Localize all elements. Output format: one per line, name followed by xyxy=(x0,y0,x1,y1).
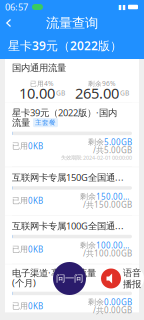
staticText: 5.00GB xyxy=(104,137,132,147)
staticText: ▮▮ xyxy=(118,3,126,11)
staticText: GB xyxy=(120,89,129,97)
staticText: 已用 xyxy=(12,196,28,206)
staticText: 0KB xyxy=(28,301,43,311)
staticText: 电子渠道·享免费流量 xyxy=(12,266,96,279)
staticText: 已用 xyxy=(12,141,28,151)
staticText: /共150.00GB xyxy=(83,199,132,210)
staticText: 265.00 xyxy=(75,83,119,103)
staticText: 剩余 xyxy=(88,137,104,147)
button[interactable]: 返回 xyxy=(0,15,18,31)
staticText: 主套餐 xyxy=(35,118,56,127)
staticText: (个月) xyxy=(12,276,36,289)
staticText: 已用4% xyxy=(30,79,54,88)
staticText: 剩余 xyxy=(80,192,96,202)
staticText: 100.00GB xyxy=(96,240,132,251)
staticText: 已用 xyxy=(12,301,28,311)
staticText: /共5.00GB xyxy=(93,145,132,155)
staticText: 互联网卡专属100G全国通用流量包 xyxy=(12,219,132,232)
staticText: 流量查询 xyxy=(46,15,98,31)
staticText: 剩余 xyxy=(80,240,96,250)
staticText: /共100.00GB xyxy=(83,248,132,259)
staticText: 失效期限: 2024-02-01 00:00:00 xyxy=(61,154,132,161)
staticText: 10.00 xyxy=(19,83,55,103)
staticText: 0KB xyxy=(28,244,43,255)
staticText: 剩余 xyxy=(88,297,104,307)
button[interactable]: 电子渠道·享免费流量 xyxy=(5,264,139,312)
staticText: 播报 xyxy=(123,278,141,290)
staticText: 150.00GB xyxy=(96,191,132,202)
staticText: 语音 xyxy=(123,267,141,278)
staticText: 星卡39元（2022版）·国内 xyxy=(12,106,117,119)
button[interactable]: 语音播报 xyxy=(99,266,144,290)
button[interactable]: 星卡39元（2022版）·国内 xyxy=(5,103,139,167)
staticText: /共0.00GB xyxy=(93,305,132,315)
staticText: 互联网卡专属150G全国通用流量包 xyxy=(12,171,132,183)
staticText: 国内通用流量 xyxy=(12,62,66,74)
button[interactable]: 互联网卡专属100G全国通用流量包 xyxy=(5,216,139,264)
staticText: 已用 xyxy=(12,244,28,254)
staticText: 星卡39元（2022版） xyxy=(8,37,122,53)
button[interactable]: 互联网卡专属150G全国通用流量包 xyxy=(5,167,139,215)
staticText: 剩余96% xyxy=(88,79,116,88)
staticText: 0KB xyxy=(28,141,43,151)
button[interactable]: 问一问 xyxy=(53,262,86,295)
staticText: 0KB xyxy=(28,195,43,206)
staticText: GB xyxy=(56,89,65,97)
staticText: 流量 xyxy=(12,117,30,128)
staticText: 问一问 xyxy=(56,273,83,284)
staticText: 0.00GB xyxy=(104,297,132,307)
staticText: 06:57 xyxy=(5,1,28,13)
